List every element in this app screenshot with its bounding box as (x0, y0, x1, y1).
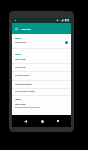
staticText: Navigation drawer (15, 83, 32, 86)
button[interactable]: Group Contact Profile (12, 87, 71, 95)
staticText: Themes (15, 98, 22, 100)
staticText: General (15, 37, 21, 39)
staticText: Save theme (15, 103, 26, 106)
staticText: Contacts screen (15, 74, 30, 77)
button[interactable]: Navigation drawer (12, 80, 71, 88)
staticText: Contacts screen (15, 74, 30, 77)
button[interactable]: Contacts screen (12, 71, 71, 79)
staticText: Screens (15, 53, 21, 55)
staticText: Theme color (15, 41, 27, 44)
staticText: Theme color (15, 41, 27, 44)
staticText: General (15, 37, 21, 39)
staticText: Themes (15, 98, 22, 100)
staticText: Chat screen (15, 66, 26, 69)
button[interactable]: Theme color (12, 38, 71, 46)
staticText: Save your theme for future use (15, 106, 40, 108)
staticText: Group Contact Profile (15, 90, 35, 93)
staticText: Main screen (15, 58, 27, 61)
staticText: Group Contact Profile (15, 90, 35, 93)
button[interactable]: Navigate up (13, 25, 21, 33)
button[interactable]: Back (21, 117, 29, 125)
staticText: Save theme (15, 103, 26, 106)
staticText: Navigation drawer (15, 83, 32, 86)
staticText: Screens (15, 53, 21, 55)
button[interactable]: Main screen (12, 55, 71, 63)
staticText: Chat screen (15, 66, 26, 69)
button[interactable]: Chat screen (12, 63, 71, 71)
button[interactable]: Save theme (12, 99, 71, 111)
button[interactable]: Home (38, 117, 46, 125)
button[interactable]: Recent apps (54, 117, 62, 125)
staticText: Save your theme for future use (15, 106, 40, 108)
staticText: Main screen (15, 58, 27, 61)
staticText: Theming (21, 27, 32, 30)
